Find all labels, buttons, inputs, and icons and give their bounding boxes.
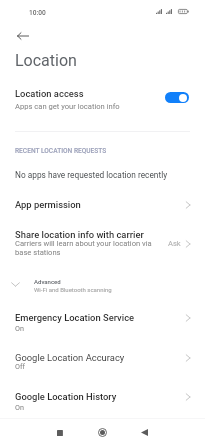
button[interactable]: Location access <box>165 92 189 103</box>
button[interactable] <box>0 194 205 216</box>
button[interactable] <box>0 272 205 296</box>
staticText: Emergency Location Service <box>15 312 135 323</box>
staticText: Carriers will learn about your location … <box>15 239 152 248</box>
staticText: 10:00 <box>29 9 46 17</box>
staticText: Google Location History <box>15 391 117 402</box>
staticText: Location access <box>15 88 84 99</box>
staticText: Ask <box>168 239 181 248</box>
staticText: base stations <box>15 248 61 257</box>
staticText: No apps have requested location recently <box>15 170 168 180</box>
button[interactable]: Recent apps <box>42 419 78 446</box>
staticText: On <box>15 403 24 411</box>
staticText: Google Location Accuracy <box>15 352 125 363</box>
button[interactable] <box>0 226 205 261</box>
button[interactable]: Home <box>84 419 120 446</box>
staticText: Location <box>15 51 77 70</box>
button[interactable]: Back <box>11 24 35 48</box>
staticText: RECENT LOCATION REQUESTS <box>15 147 107 155</box>
staticText: Wi-Fi and Bluetooth scanning <box>34 286 112 293</box>
staticText: Off <box>15 362 25 370</box>
staticText: Advanced <box>34 278 61 285</box>
staticText: Apps can get your location info <box>15 102 120 111</box>
button[interactable] <box>0 348 205 376</box>
button[interactable]: Back <box>126 419 162 446</box>
staticText: Share location info with carrier <box>15 229 144 240</box>
button[interactable] <box>0 387 205 415</box>
button[interactable] <box>0 81 205 111</box>
staticText: On <box>15 324 24 332</box>
staticText: App permission <box>15 199 81 210</box>
button[interactable] <box>0 308 205 336</box>
